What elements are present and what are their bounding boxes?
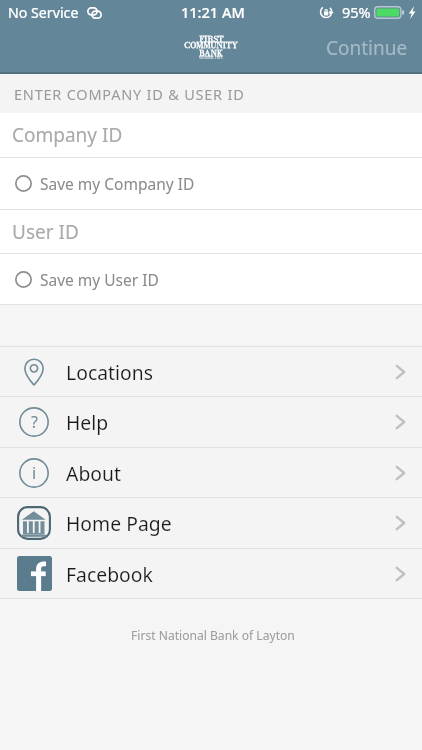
button[interactable]: Save my Company ID [0,158,422,209]
staticText: FIRST [199,33,224,45]
staticText: i [32,462,37,484]
other: Facebook [17,556,52,591]
staticText: MEMBER FDIC [199,55,224,60]
button[interactable]: Locations [0,347,422,396]
staticText: 95% [342,2,371,22]
staticText: COMMUNITY [184,39,238,51]
staticText: Continue [326,35,408,61]
staticText: 11:21 AM [181,2,245,22]
staticText: First National Bank of Layton [131,627,295,643]
staticText: BANK [199,47,223,59]
staticText: Company ID [12,122,123,148]
staticText: Save my Company ID [40,173,195,194]
staticText: About [66,460,122,486]
staticText: Facebook [66,561,153,587]
button[interactable]: Facebook [0,549,422,598]
button[interactable]: ? [0,397,422,447]
staticText: No Service [8,3,79,22]
button[interactable]: Continue [310,31,422,67]
staticText: Save my User ID [40,269,159,290]
staticText: ? [31,411,38,433]
button[interactable]: Home Page [0,498,422,548]
staticText: Locations [66,359,154,385]
button[interactable]: Save my User ID [0,254,422,304]
staticText: ENTER COMPANY ID & USER ID [14,84,245,104]
button[interactable]: Company ID [0,113,422,157]
staticText: Home Page [66,510,172,536]
staticText: Help [66,409,109,435]
button[interactable]: i [0,448,422,497]
button[interactable]: User ID [0,210,422,253]
staticText: User ID [12,219,79,245]
